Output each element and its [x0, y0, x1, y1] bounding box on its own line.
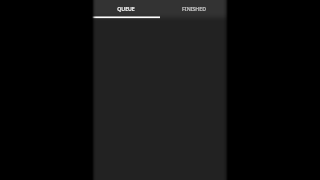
button[interactable]: FINISHED — [160, 0, 228, 18]
staticText: FINISHED — [182, 5, 206, 12]
button[interactable]: QUEUE — [92, 0, 160, 18]
staticText: QUEUE — [117, 5, 135, 12]
